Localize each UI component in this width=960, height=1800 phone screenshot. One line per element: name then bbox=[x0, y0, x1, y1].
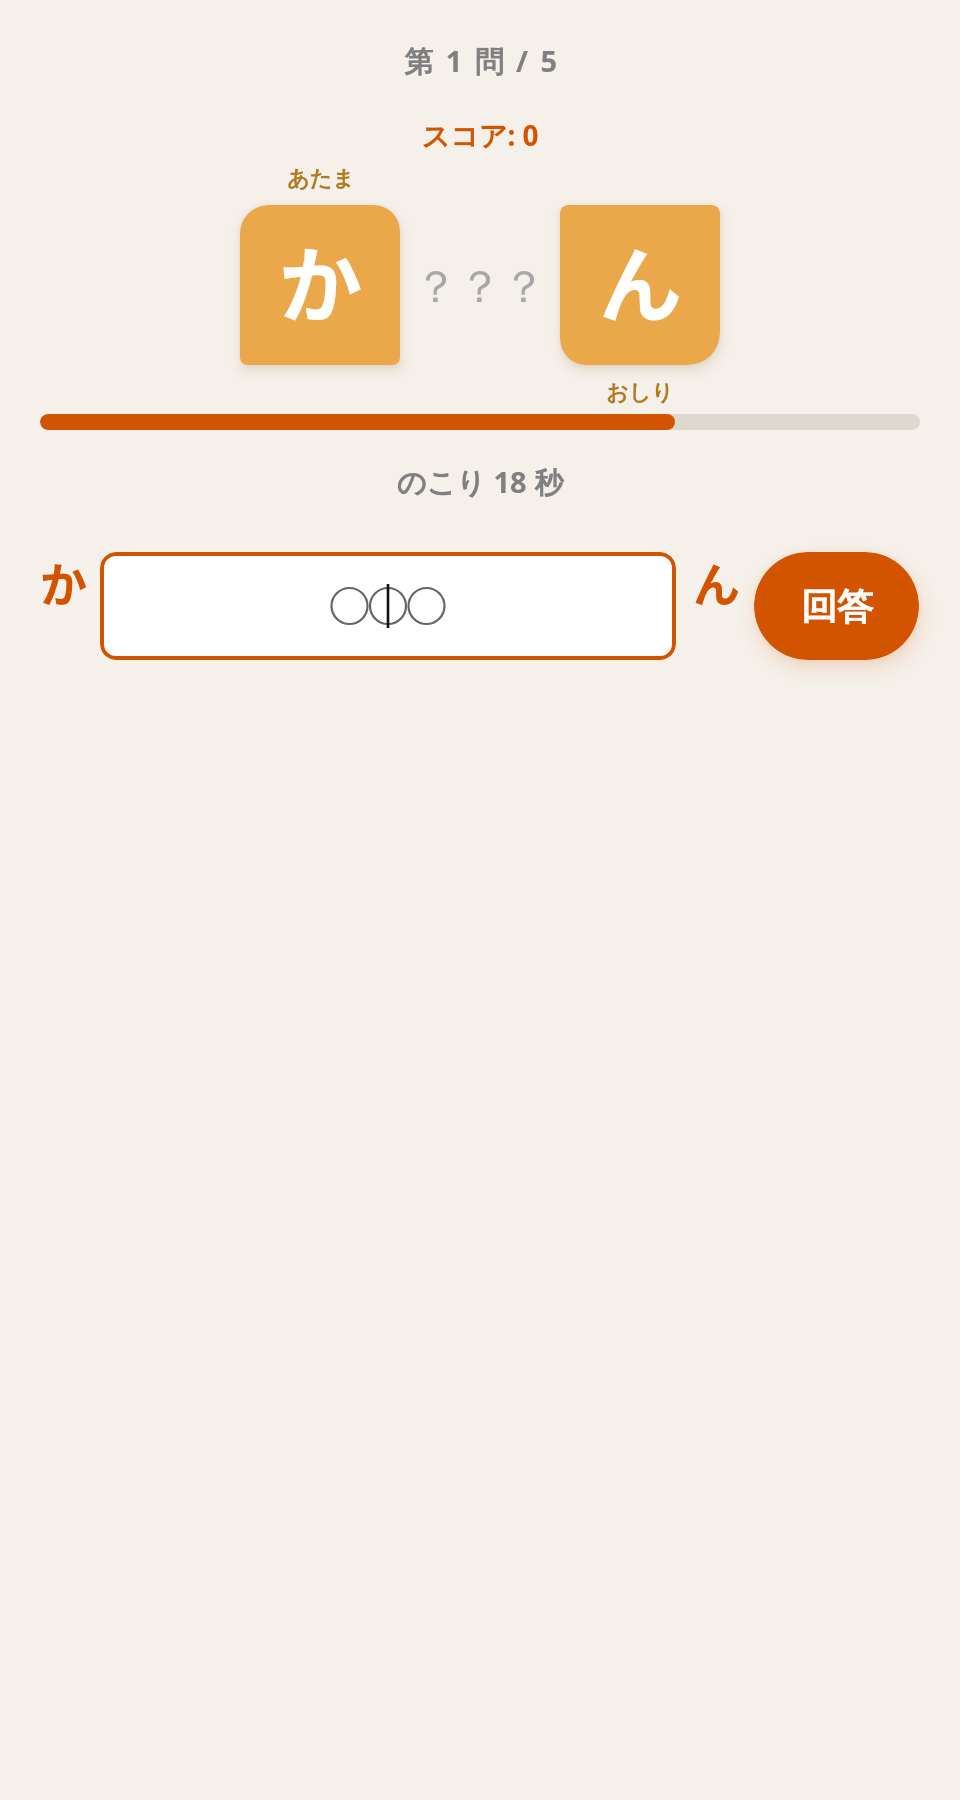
staticText: ん bbox=[693, 547, 740, 615]
staticText: スコア: 0 bbox=[0, 116, 960, 154]
button[interactable]: おしりの文字 ん bbox=[560, 205, 720, 365]
staticText: のこり 18 秒 bbox=[0, 462, 960, 502]
staticText: ？？？ bbox=[414, 260, 546, 315]
staticText: 回答 bbox=[801, 584, 873, 629]
staticText: か bbox=[40, 547, 87, 615]
staticText: 第 1 問 / 5 bbox=[2, 41, 960, 81]
button[interactable]: あたまの文字 か bbox=[240, 205, 400, 365]
staticText: か bbox=[279, 220, 362, 340]
button[interactable]: 回答 bbox=[754, 552, 919, 660]
staticText: おしり bbox=[606, 379, 674, 407]
button[interactable]: こたえを入力 bbox=[100, 552, 676, 660]
staticText: あたま bbox=[287, 165, 355, 193]
staticText: ん bbox=[599, 220, 682, 340]
